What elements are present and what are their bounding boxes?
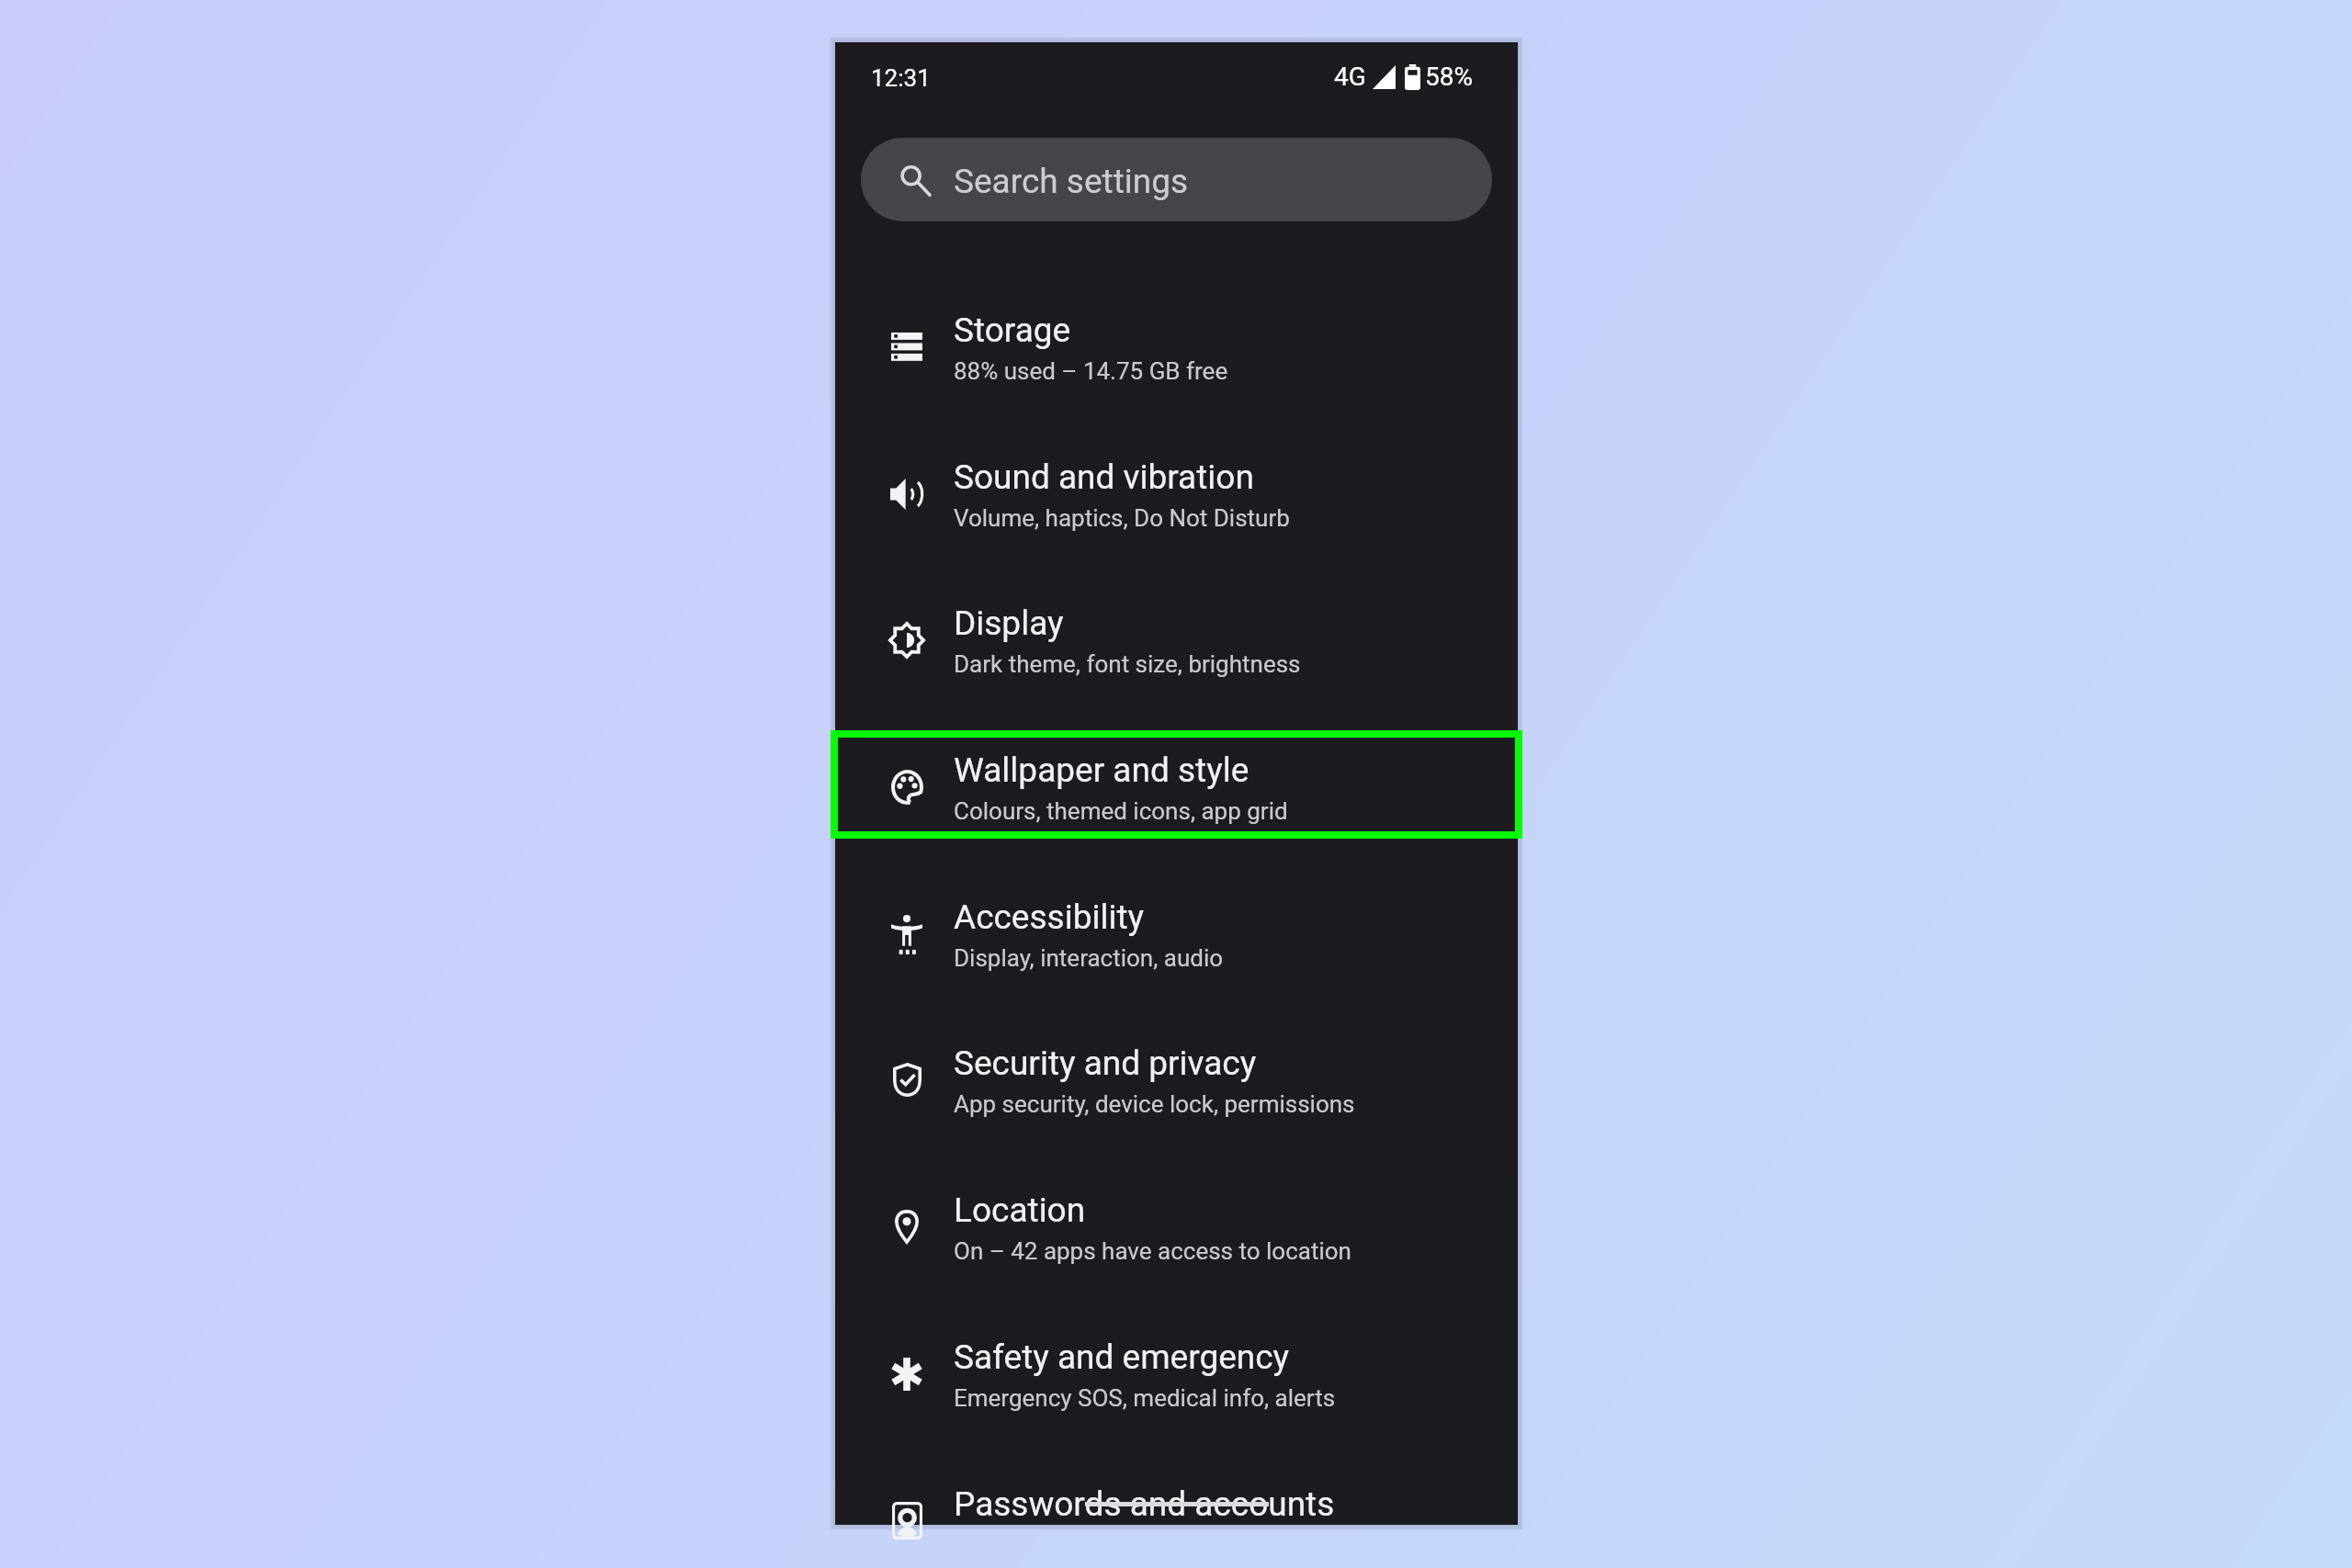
- staticText: 88% used – 14.75 GB free: [954, 357, 1228, 385]
- button[interactable]: Security and privacy: [835, 1014, 1518, 1143]
- staticText: Wallpaper and style: [954, 750, 1249, 790]
- button[interactable]: Accessibility: [835, 868, 1518, 997]
- staticText: Display: [954, 604, 1064, 643]
- button[interactable]: Display: [835, 574, 1518, 703]
- staticText: Security and privacy: [954, 1043, 1257, 1083]
- staticText: Sound and vibration: [954, 457, 1254, 497]
- staticText: 12:31: [871, 64, 931, 92]
- button[interactable]: Sound and vibration: [835, 428, 1518, 557]
- staticText: Emergency SOS, medical info, alerts: [954, 1384, 1336, 1412]
- staticText: Search settings: [954, 162, 1189, 201]
- button[interactable]: Passwords and accounts: [835, 1455, 1518, 1568]
- staticText: App security, device lock, permissions: [954, 1090, 1355, 1118]
- staticText: Volume, haptics, Do Not Disturb: [954, 504, 1290, 532]
- other: Mobile signal strength: [1373, 65, 1396, 89]
- staticText: 58%: [1425, 62, 1473, 92]
- button[interactable]: Location: [835, 1161, 1518, 1290]
- staticText: On – 42 apps have access to location: [954, 1237, 1351, 1265]
- staticText: Passwords and accounts: [954, 1484, 1335, 1524]
- staticText: Dark theme, font size, brightness: [954, 650, 1301, 678]
- staticText: Storage: [954, 310, 1071, 350]
- staticText: Safety and emergency: [954, 1337, 1290, 1377]
- staticText: Colours, themed icons, app grid: [954, 797, 1288, 825]
- staticText: Display, interaction, audio: [954, 944, 1224, 972]
- button[interactable]: Search settings: [861, 138, 1492, 221]
- button[interactable]: Safety and emergency: [835, 1308, 1518, 1437]
- button[interactable]: Wallpaper and style: [835, 721, 1518, 850]
- button[interactable]: Storage: [835, 281, 1518, 410]
- staticText: Accessibility: [954, 897, 1145, 937]
- other: Battery 58 percent: [1405, 64, 1420, 90]
- staticText: 4G: [1334, 62, 1366, 92]
- staticText: Location: [954, 1190, 1086, 1230]
